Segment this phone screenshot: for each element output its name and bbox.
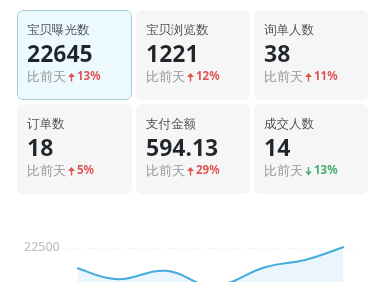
other: Trending up <box>186 70 195 84</box>
staticText: 订单数 <box>27 116 65 132</box>
staticText: 1221 <box>146 37 199 68</box>
staticText: 13% <box>314 162 338 178</box>
staticText: 比前天 <box>146 162 185 178</box>
staticText: 询单人数 <box>264 22 314 38</box>
staticText: 5% <box>77 162 94 178</box>
staticText: 支付金额 <box>146 116 196 132</box>
staticText: 11% <box>314 68 338 84</box>
staticText: 比前天 <box>146 68 185 84</box>
button[interactable]: 22500 <box>0 194 380 282</box>
staticText: 594.13 <box>146 131 219 162</box>
staticText: 22500 <box>24 238 60 255</box>
button[interactable]: 订单数 <box>17 104 132 194</box>
staticText: 12% <box>196 68 220 84</box>
button[interactable]: 宝贝曝光数 <box>17 10 132 100</box>
staticText: 14 <box>264 131 291 162</box>
staticText: 比前天 <box>27 162 66 178</box>
staticText: 比前天 <box>27 68 66 84</box>
staticText: 宝贝浏览数 <box>146 22 209 38</box>
button[interactable]: 成交人数 <box>254 104 368 194</box>
other: Trending up <box>67 164 76 178</box>
button[interactable]: 询单人数 <box>254 10 368 100</box>
other: Trending down <box>304 164 313 178</box>
staticText: 22645 <box>27 37 93 68</box>
other: Trending up <box>67 70 76 84</box>
staticText: 29% <box>196 162 220 178</box>
staticText: 13% <box>77 68 101 84</box>
staticText: 比前天 <box>264 68 303 84</box>
button[interactable]: 支付金额 <box>136 104 250 194</box>
staticText: 比前天 <box>264 162 303 178</box>
staticText: 38 <box>264 37 291 68</box>
other: Trending up <box>304 70 313 84</box>
staticText: 宝贝曝光数 <box>27 22 90 38</box>
staticText: 18 <box>27 131 54 162</box>
staticText: 成交人数 <box>264 116 314 132</box>
button[interactable]: 宝贝浏览数 <box>136 10 250 100</box>
other: Trending up <box>186 164 195 178</box>
